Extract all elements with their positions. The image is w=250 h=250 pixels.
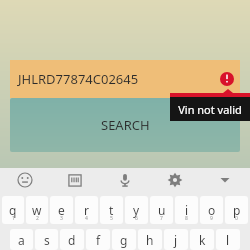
button[interactable]: k [190,229,214,250]
staticText: i [185,202,189,218]
staticText: 4 [85,215,88,222]
button[interactable]: JHLRD77874C02645 [10,60,240,98]
staticText: d [68,232,76,248]
staticText: g [120,232,128,248]
button[interactable]: i [175,196,198,224]
staticText: l [226,232,230,248]
staticText: h [146,232,154,248]
staticText: k [199,232,206,248]
button[interactable]: r [75,196,98,224]
staticText: f [96,232,101,248]
button[interactable]: Vin not valid [170,97,250,121]
staticText: 9 [210,215,213,222]
staticText: 1 [12,215,15,222]
button[interactable]: l [216,229,240,250]
staticText: w [32,202,42,218]
button[interactable]: q [2,196,24,224]
staticText: u [158,202,166,218]
staticText: 2 [36,215,39,222]
button[interactable]: Settings [150,168,200,192]
button[interactable]: w [26,196,48,224]
button[interactable]: g [112,229,136,250]
staticText: o [208,202,216,218]
staticText: e [58,202,65,218]
staticText: y [133,202,140,218]
button[interactable]: Keyboard layout [50,168,100,192]
button[interactable]: Error [220,72,234,86]
staticText: 7 [160,215,163,222]
staticText: j [174,232,178,248]
staticText: 0 [235,215,238,222]
button[interactable]: Emoji [0,168,50,192]
button[interactable]: t [100,196,123,224]
button[interactable]: e [50,196,73,224]
button[interactable]: d [60,229,84,250]
staticText: p [233,202,241,218]
staticText: r [84,202,89,218]
button[interactable]: SEARCH [10,98,240,152]
staticText: t [109,202,114,218]
staticText: 8 [185,215,188,222]
button[interactable]: Voice input [100,168,150,192]
staticText: s [44,232,50,248]
staticText: JHLRD77874C02645 [18,70,139,88]
staticText: 5 [110,215,113,222]
button[interactable]: Hide keyboard [200,168,250,192]
staticText: Vin not valid [178,102,242,117]
button[interactable]: o [200,196,223,224]
button[interactable]: p [225,196,248,224]
button[interactable]: y [125,196,148,224]
button[interactable]: a [10,229,33,250]
staticText: q [9,202,17,218]
button[interactable]: h [138,229,162,250]
staticText: SEARCH [101,116,150,134]
staticText: 3 [60,215,63,222]
staticText: a [18,232,25,248]
button[interactable]: s [35,229,58,250]
button[interactable]: f [86,229,110,250]
button[interactable]: u [150,196,173,224]
button[interactable]: j [164,229,188,250]
staticText: 6 [135,215,138,222]
